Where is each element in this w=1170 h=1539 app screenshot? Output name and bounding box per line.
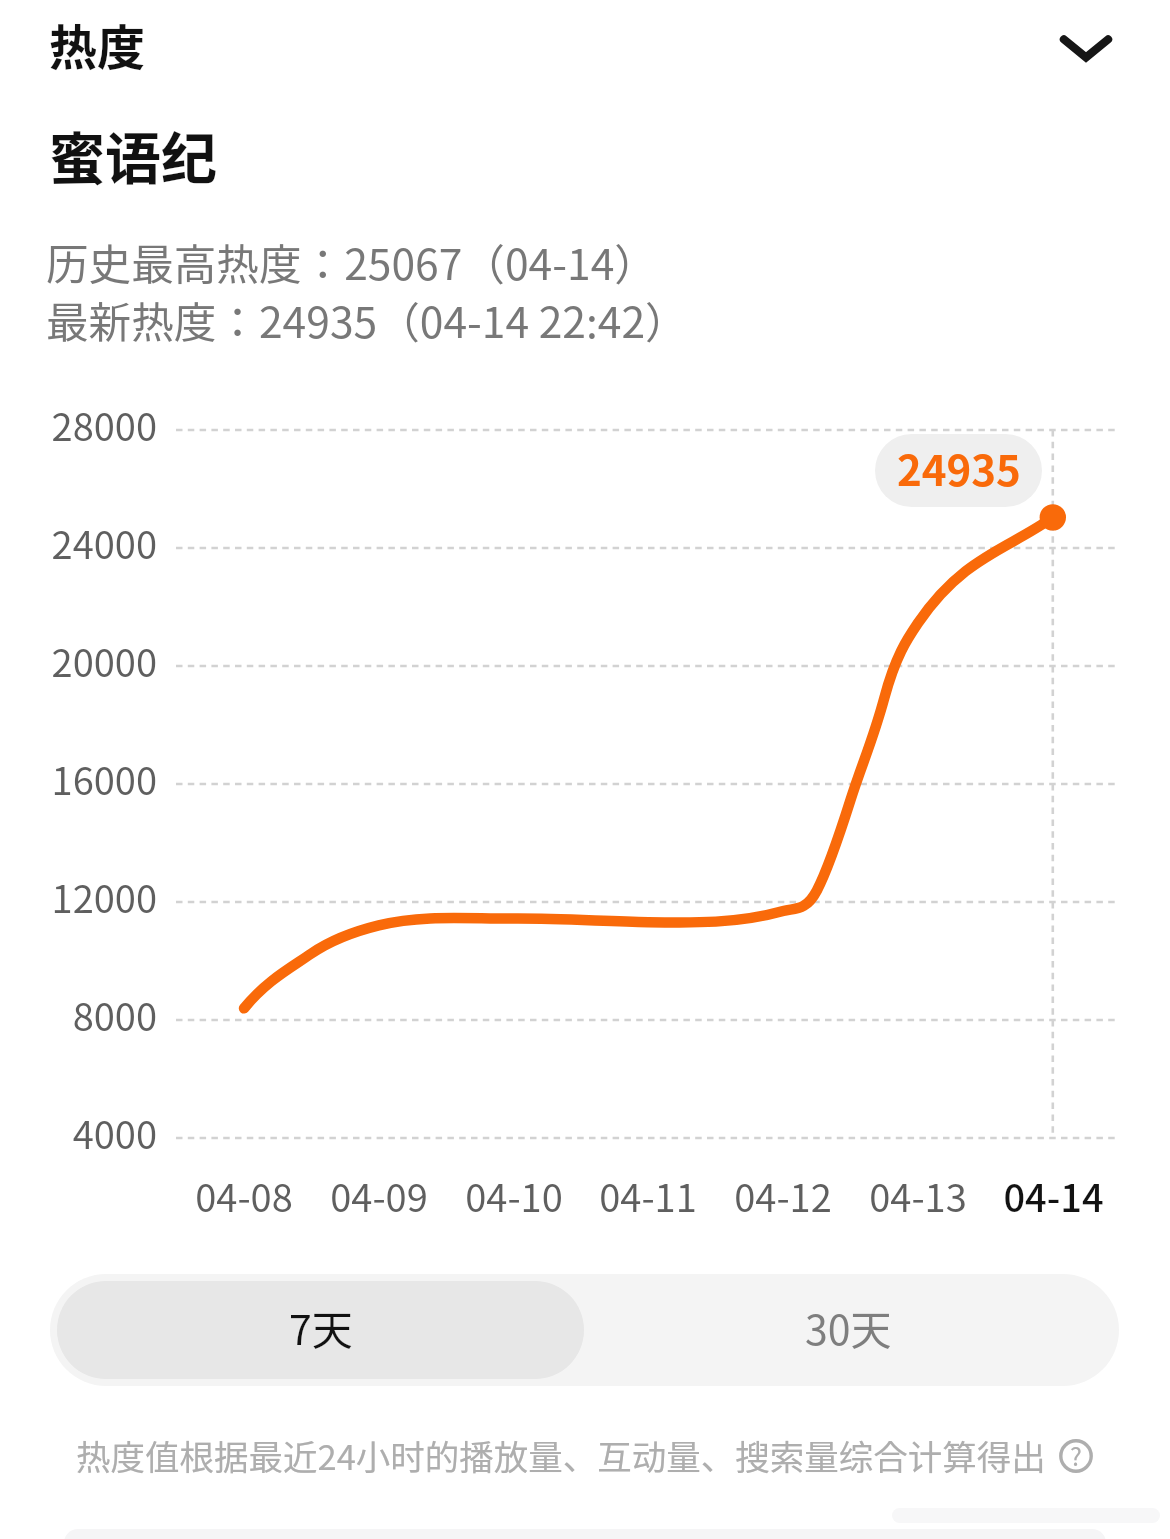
staticText: 12000: [51, 869, 157, 924]
staticText: 04-12: [734, 1168, 832, 1223]
staticText: 04-10: [465, 1168, 563, 1223]
staticText: 热度: [49, 9, 146, 79]
staticText: 蜜语纪: [49, 114, 217, 195]
staticText: 4000: [72, 1105, 157, 1160]
staticText: 热度值根据最近24小时的播放量、互动量、搜索量综合计算得出: [76, 1430, 1046, 1480]
button[interactable]: 热度值根据最近24小时的播放量、互动量、搜索量综合计算得出: [76, 1430, 1046, 1480]
staticText: 最新热度：24935（04-14 22:42）: [46, 289, 688, 351]
staticText: 04-08: [195, 1168, 293, 1223]
staticText: 20000: [51, 633, 157, 688]
staticText: 16000: [51, 751, 157, 806]
staticText: 04-11: [599, 1168, 697, 1223]
button[interactable]: 7天: [57, 1281, 584, 1379]
button[interactable]: 24935: [875, 434, 1042, 507]
staticText: 04-13: [869, 1168, 967, 1223]
staticText: 04-09: [330, 1168, 428, 1223]
staticText: 24935: [897, 437, 1021, 498]
staticText: ?: [1070, 1437, 1082, 1473]
staticText: 历史最高热度：25067（04-14）: [46, 231, 657, 293]
staticText: 8000: [72, 987, 157, 1042]
button[interactable]: 热度: [49, 9, 146, 79]
staticText: 28000: [51, 397, 157, 452]
button[interactable]: 30天: [584, 1281, 1112, 1379]
staticText: 7天: [289, 1297, 353, 1356]
button[interactable]: Help: [1056, 1436, 1096, 1476]
button[interactable]: Collapse: [1040, 8, 1132, 100]
staticText: 04-14: [1003, 1168, 1104, 1223]
staticText: 24000: [51, 515, 157, 570]
staticText: 30天: [805, 1297, 892, 1356]
